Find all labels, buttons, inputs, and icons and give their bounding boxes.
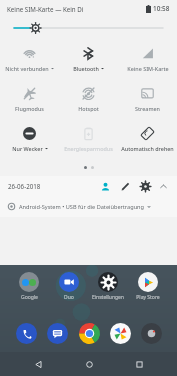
button[interactable]: Einstellungen <box>136 177 154 195</box>
button[interactable]: Keine SIM-Karte <box>118 41 177 81</box>
button[interactable]: Fotos <box>107 320 133 346</box>
button[interactable]: Duo <box>52 272 86 301</box>
button[interactable]: Play Store <box>131 272 165 301</box>
staticText: Streamen <box>135 105 160 112</box>
button[interactable]: Chrome <box>76 320 102 346</box>
staticText: Einstellungen <box>92 294 124 301</box>
button[interactable]: Flugmodus <box>0 81 59 121</box>
staticText: Energiesparmodus <box>64 145 113 152</box>
button[interactable]: Nachrichten <box>44 320 70 346</box>
button[interactable]: Nicht verbunden <box>0 41 59 81</box>
staticText: Keine SIM-Karte — Kein Di <box>7 5 84 13</box>
button[interactable]: Android-System • USB für die Dateiübertr… <box>0 196 177 217</box>
staticText: Flugmodus <box>15 105 44 112</box>
button[interactable]: Streamen <box>118 81 177 121</box>
button[interactable]: Zurück <box>26 352 50 376</box>
staticText: Keine SIM-Karte <box>127 65 169 72</box>
staticText: 10:58 <box>153 4 170 13</box>
button[interactable]: Einstellungen <box>91 272 125 301</box>
staticText: Duo <box>64 294 74 301</box>
button[interactable]: Startbildschirm <box>77 352 101 376</box>
button[interactable]: Helligkeit <box>0 17 177 39</box>
button[interactable]: Bearbeiten <box>116 177 134 195</box>
staticText: Automatisch drehen <box>121 145 174 152</box>
staticText: Google <box>21 294 38 301</box>
button[interactable]: Energiesparmodus <box>59 121 118 161</box>
staticText: Bluetooth <box>73 65 99 72</box>
button[interactable]: Übersicht <box>127 352 151 376</box>
button[interactable]: Einklappen <box>155 178 171 194</box>
staticText: Nicht verbunden <box>5 65 49 72</box>
button[interactable]: Nur Wecker <box>0 121 59 161</box>
staticText: 26-06-2018 <box>8 182 41 190</box>
staticText: Nur Wecker <box>12 145 43 152</box>
button[interactable]: Bluetooth <box>59 41 118 81</box>
staticText: Android-System • USB für die Dateiübertr… <box>19 203 144 211</box>
button[interactable]: Kamera <box>138 320 164 346</box>
staticText: Hotspot <box>78 105 99 112</box>
staticText: Play Store <box>136 294 160 301</box>
button[interactable]: Hotspot <box>59 81 118 121</box>
button[interactable]: Automatisch drehen <box>118 121 177 161</box>
button[interactable]: Nutzer <box>96 177 114 195</box>
button[interactable]: Google <box>12 272 46 301</box>
button[interactable]: Telefon <box>13 320 39 346</box>
